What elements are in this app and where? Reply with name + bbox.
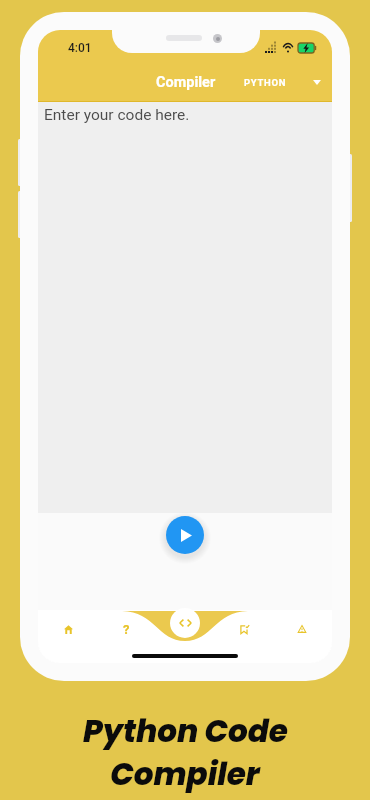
button[interactable]: Report <box>291 618 313 640</box>
staticText: Compiler <box>156 74 216 91</box>
staticText: Enter your code here. <box>44 106 190 124</box>
button[interactable]: Code editor <box>170 608 200 638</box>
button[interactable]: Saved <box>233 618 255 640</box>
button[interactable]: PYTHON <box>238 69 330 95</box>
button[interactable]: Help <box>115 618 137 640</box>
staticText: Compiler <box>110 752 260 795</box>
staticText: Python Code <box>83 709 288 752</box>
staticText: 4:01 <box>68 41 92 55</box>
button[interactable]: Home <box>57 618 79 640</box>
staticText: PYTHON <box>244 77 287 88</box>
button[interactable]: Run code <box>166 516 204 554</box>
staticText: ? <box>123 622 130 637</box>
